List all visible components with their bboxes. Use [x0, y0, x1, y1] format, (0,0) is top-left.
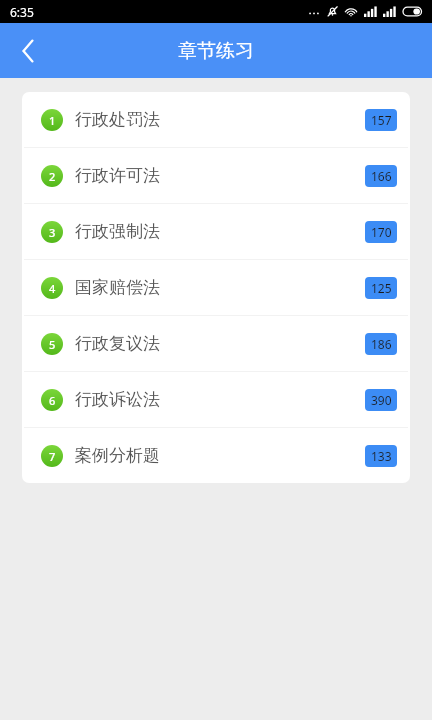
staticText: 案例分析题 — [75, 445, 365, 466]
staticText: 3 — [49, 225, 56, 240]
staticText: 186 — [371, 336, 392, 352]
staticText: 行政复议法 — [75, 333, 365, 354]
staticText: 170 — [371, 224, 392, 240]
button[interactable]: 2 — [22, 148, 410, 203]
button[interactable]: 6 — [22, 372, 410, 427]
staticText: 125 — [371, 280, 392, 296]
button[interactable]: 5 — [22, 316, 410, 371]
button[interactable]: Back — [0, 23, 56, 78]
staticText: 7 — [49, 449, 56, 464]
staticText: 行政诉讼法 — [75, 389, 365, 410]
staticText: 行政处罚法 — [75, 109, 365, 130]
staticText: 国家赔偿法 — [75, 277, 365, 298]
staticText: 章节练习 — [178, 39, 254, 63]
button[interactable]: 4 — [22, 260, 410, 315]
staticText: 行政强制法 — [75, 221, 365, 242]
staticText: 行政许可法 — [75, 165, 365, 186]
button[interactable]: 1 — [22, 92, 410, 147]
staticText: 5 — [49, 337, 56, 352]
staticText: 6:35 — [10, 4, 34, 20]
staticText: 133 — [371, 448, 392, 464]
button[interactable]: 7 — [22, 428, 410, 483]
staticText: 166 — [371, 168, 392, 184]
staticText: 390 — [371, 392, 392, 408]
staticText: 157 — [371, 112, 392, 128]
button[interactable]: 3 — [22, 204, 410, 259]
staticText: 6 — [49, 393, 56, 408]
staticText: 2 — [49, 169, 56, 184]
staticText: 1 — [49, 113, 56, 128]
staticText: 4 — [49, 281, 56, 296]
